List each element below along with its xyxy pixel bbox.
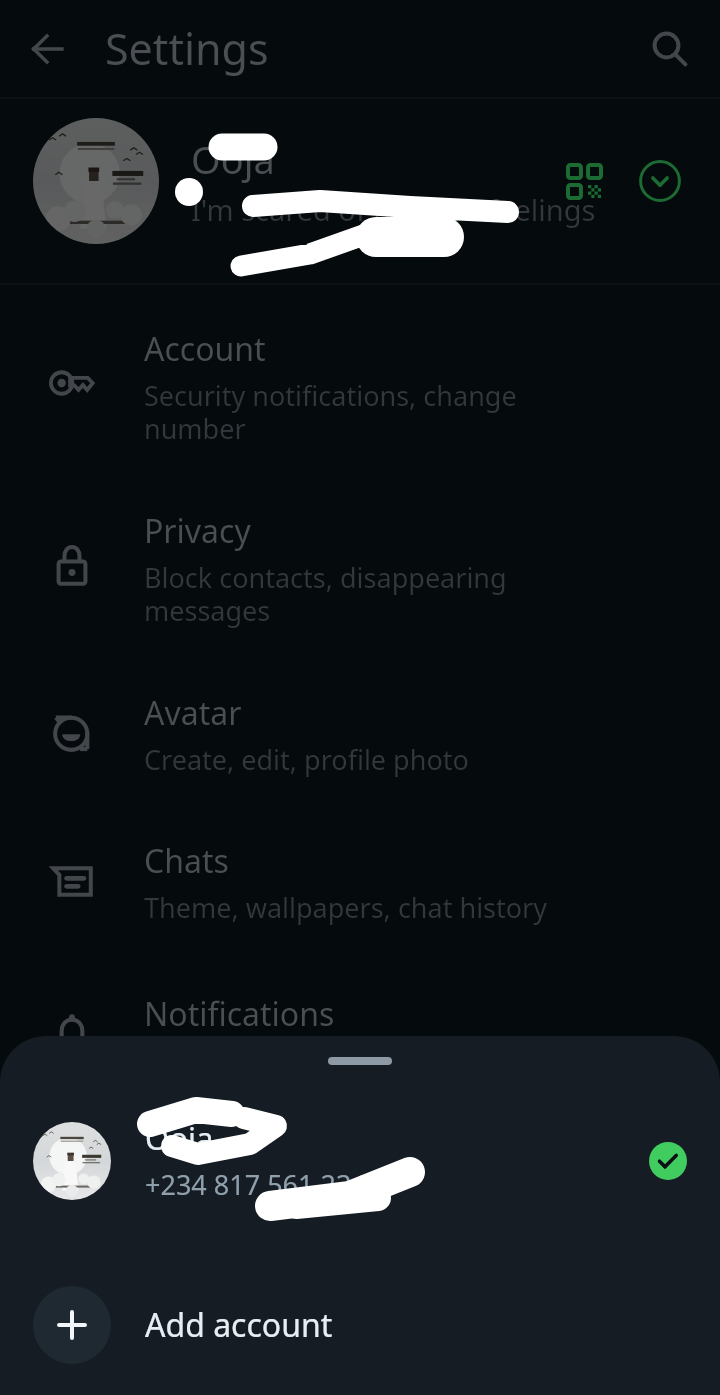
button[interactable]: QR code [548, 145, 620, 217]
staticText: Ooja [191, 133, 275, 185]
staticText: Notifications [144, 992, 335, 1036]
button[interactable]: Privacy [0, 484, 720, 666]
button[interactable]: Back [12, 13, 84, 85]
staticText: Account [144, 327, 266, 371]
staticText: Avatar [144, 691, 242, 735]
staticText: Security notifications, change number [144, 377, 517, 447]
button[interactable]: Ooja [0, 1096, 720, 1226]
button[interactable]: Account [0, 302, 720, 484]
staticText: Theme, wallpapers, chat history [144, 889, 548, 926]
staticText: +234 817 561 2345 [145, 1166, 383, 1203]
staticText: Privacy [144, 509, 251, 553]
button[interactable]: Notifications [0, 967, 720, 1115]
staticText: Message, group & call tones [144, 1042, 502, 1079]
button[interactable]: Add account [0, 1270, 720, 1380]
button[interactable]: Avatar [0, 666, 720, 814]
button[interactable]: Chats [0, 814, 720, 962]
staticText: Settings [105, 19, 269, 78]
staticText: Create, edit, profile photo [144, 741, 469, 778]
staticText: Add account [145, 1303, 333, 1347]
staticText: I'm scared of my own feelings [191, 190, 596, 229]
button[interactable]: Expand profile [624, 145, 696, 217]
staticText: Chats [144, 839, 229, 883]
staticText: Ooja [145, 1117, 214, 1159]
button[interactable]: Ooja [0, 99, 720, 283]
button[interactable]: Search [634, 13, 706, 85]
staticText: Block contacts, disappearing messages [144, 559, 507, 629]
